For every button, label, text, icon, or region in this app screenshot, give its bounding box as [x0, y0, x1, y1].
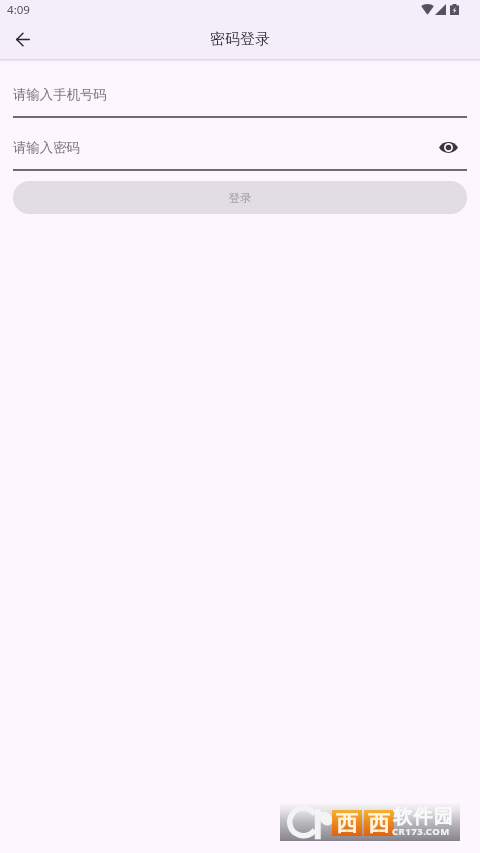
staticText: 密码登录 — [210, 30, 270, 49]
staticText: 软件园 — [393, 805, 454, 829]
staticText: 登录 — [228, 191, 252, 206]
button[interactable]: Back — [7, 24, 38, 54]
staticText: 西 — [336, 810, 358, 836]
staticText: 请输入手机号码 — [13, 86, 107, 103]
staticText: CR173.COM — [392, 825, 450, 838]
staticText: 4:09 — [7, 2, 31, 18]
button[interactable]: 登录 — [13, 181, 467, 214]
staticText: 请输入密码 — [13, 139, 80, 156]
staticText: 西 — [368, 810, 390, 836]
button[interactable]: 请输入密码 — [13, 132, 467, 162]
button[interactable]: Show password — [432, 133, 464, 161]
button[interactable]: 请输入手机号码 — [13, 80, 467, 110]
